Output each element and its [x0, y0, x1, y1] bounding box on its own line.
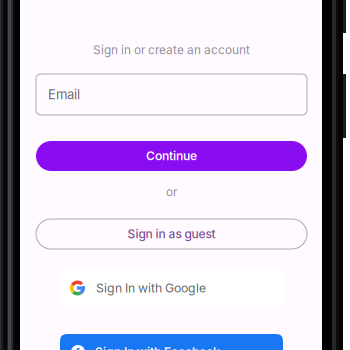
- button[interactable]: Sign In with Google: [60, 270, 283, 306]
- button[interactable]: Sign in as guest: [36, 219, 307, 249]
- button[interactable]: Continue: [36, 141, 307, 171]
- staticText: or: [166, 185, 177, 199]
- staticText: Sign In with Google: [96, 281, 206, 295]
- staticText: Sign in as guest: [127, 227, 215, 241]
- staticText: Sign In with Facebook: [95, 345, 220, 350]
- staticText: Continue: [146, 149, 197, 163]
- staticText: Email: [48, 87, 80, 102]
- staticText: Sign in or create an account: [93, 43, 250, 57]
- button[interactable]: f: [60, 334, 283, 350]
- staticText: f: [75, 345, 80, 350]
